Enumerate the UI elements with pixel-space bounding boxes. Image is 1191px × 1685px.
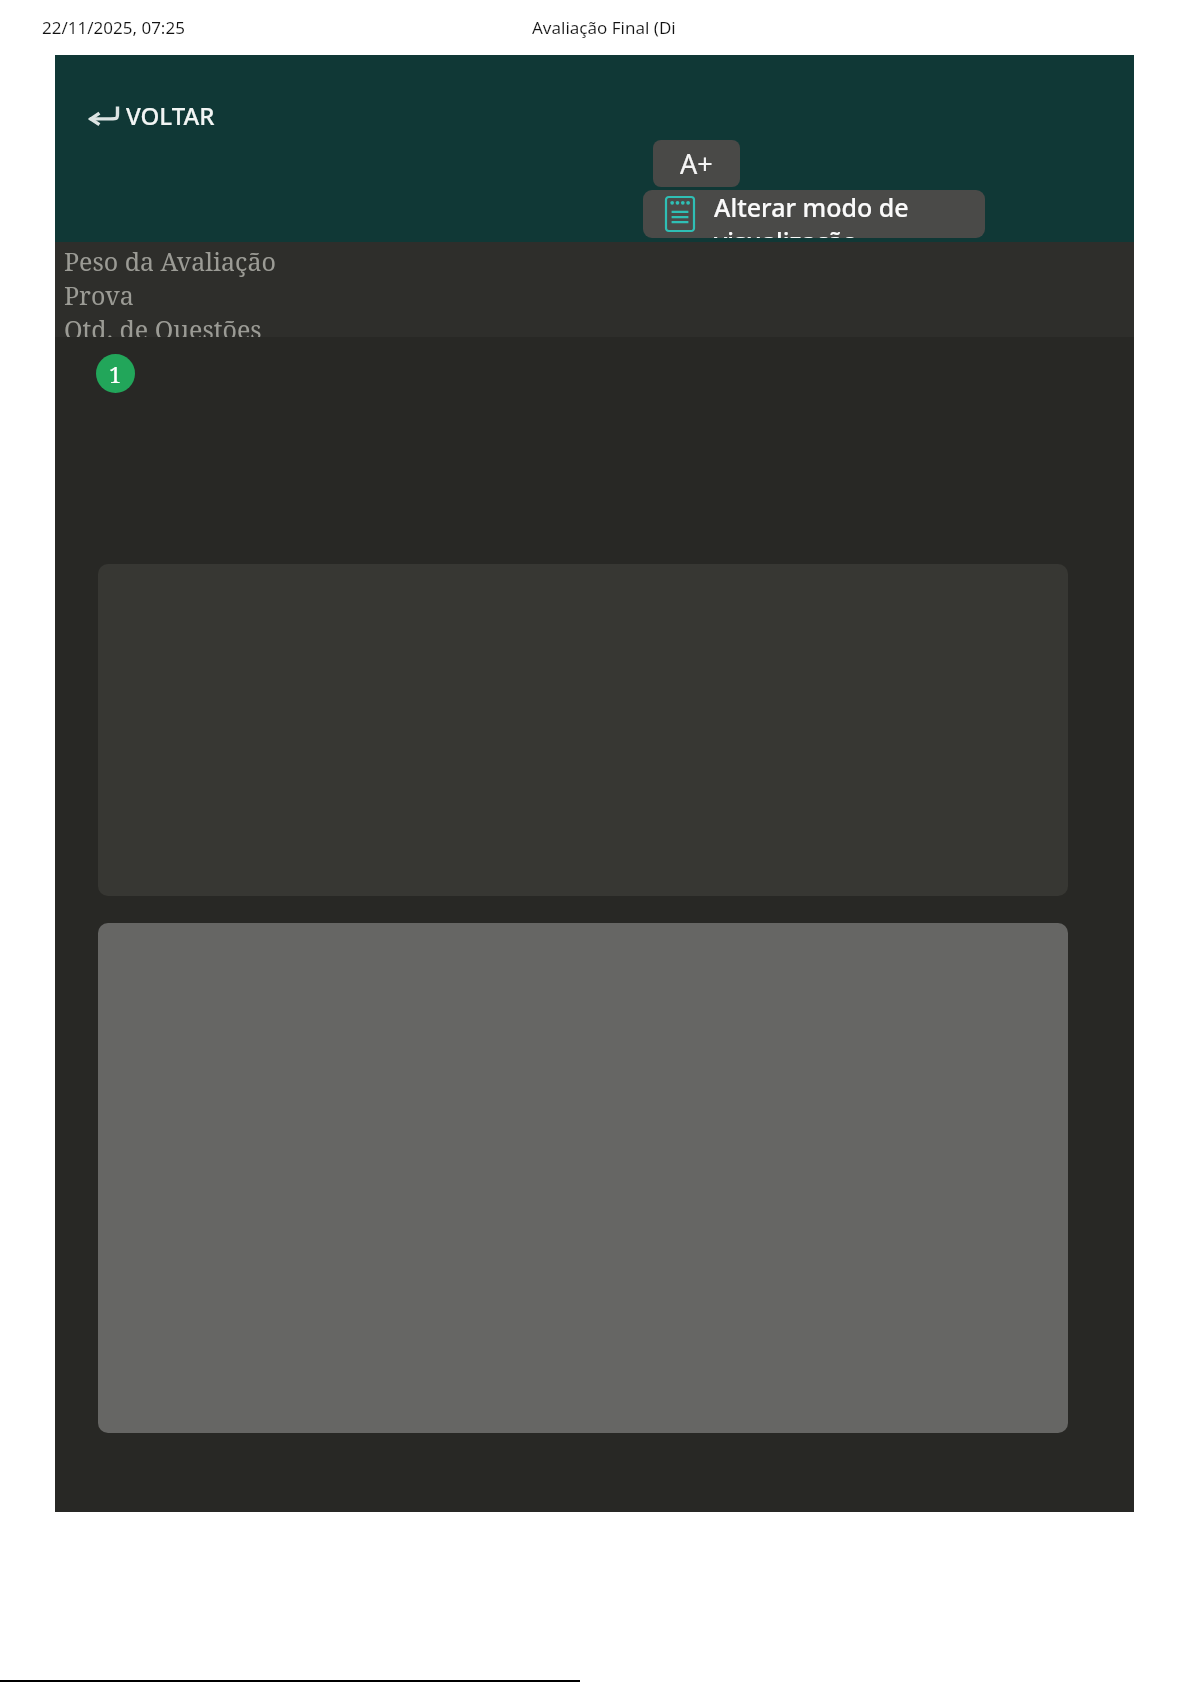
button[interactable]: VOLTAR [85, 93, 219, 138]
other: Alterar modo de visualização [666, 197, 694, 231]
staticText: Avaliação Final (Di [532, 16, 676, 39]
staticText: 1 [109, 359, 122, 389]
staticText: A+ [680, 145, 713, 182]
button[interactable]: A+ [653, 140, 740, 187]
button[interactable]: Alterar modo de visualização [643, 190, 985, 238]
staticText: VOLTAR [126, 99, 215, 132]
staticText: 22/11/2025, 07:25 [42, 16, 185, 39]
staticText: Qtd. de Questões [64, 312, 262, 337]
staticText: Alterar modo de visualização [714, 190, 985, 238]
button[interactable]: 1 [96, 354, 135, 393]
staticText: Prova [64, 278, 134, 312]
staticText: Peso da Avaliação [64, 244, 276, 278]
